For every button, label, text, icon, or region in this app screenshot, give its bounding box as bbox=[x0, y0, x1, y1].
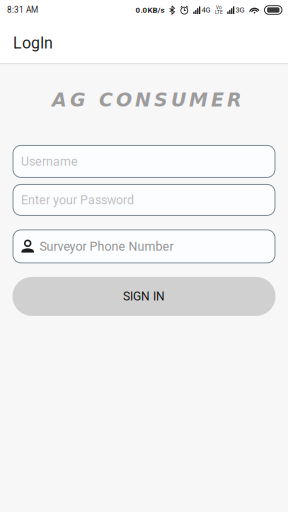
button[interactable]: SIGN IN bbox=[12, 277, 275, 316]
staticText: 0.0KB/s bbox=[135, 5, 164, 15]
button[interactable]: Surveyor Phone Number bbox=[13, 230, 275, 263]
button[interactable]: Username bbox=[13, 145, 275, 177]
staticText: LTE bbox=[215, 10, 223, 15]
button[interactable]: Enter your Password bbox=[13, 184, 275, 215]
staticText: Enter your Password bbox=[21, 193, 134, 207]
staticText: 3G bbox=[235, 6, 244, 14]
staticText: 4G bbox=[201, 6, 210, 14]
staticText: Username bbox=[21, 154, 78, 169]
staticText: Vo bbox=[216, 5, 222, 10]
staticText: LogIn bbox=[13, 34, 53, 52]
staticText: Surveyor Phone Number bbox=[39, 239, 173, 254]
staticText: 8:31 AM bbox=[7, 5, 38, 15]
staticText: SIGN IN bbox=[123, 289, 165, 303]
staticText: AG CONSUMER bbox=[52, 89, 242, 111]
